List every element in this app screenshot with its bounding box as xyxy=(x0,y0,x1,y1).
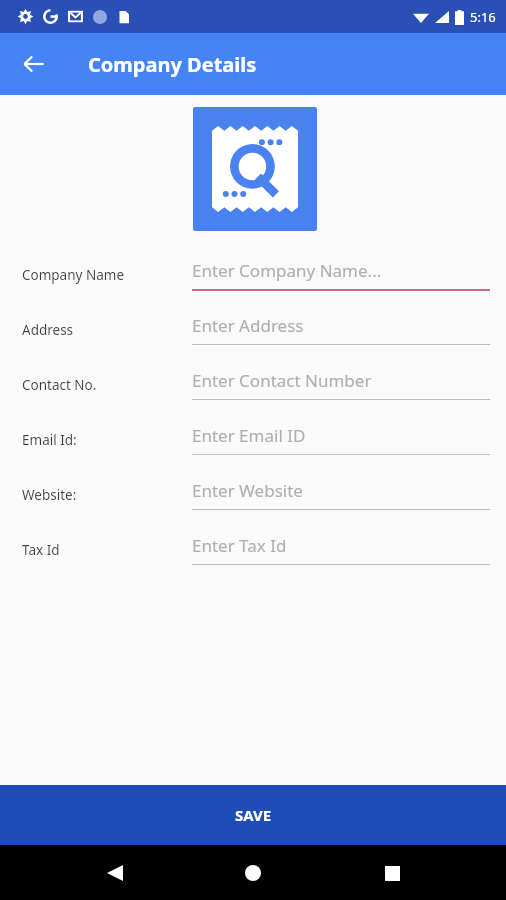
staticText: Enter Address xyxy=(192,314,304,337)
button[interactable]: Tax Id xyxy=(0,522,506,577)
staticText: Tax Id xyxy=(22,541,60,559)
button[interactable]: Contact No. xyxy=(0,357,506,412)
staticText: Enter Website xyxy=(192,479,303,502)
button[interactable]: Email Id: xyxy=(0,412,506,467)
staticText: 5:16 xyxy=(470,8,496,26)
staticText: Address xyxy=(22,321,74,339)
button[interactable]: Address xyxy=(0,302,506,357)
staticText: Email Id: xyxy=(22,431,77,449)
staticText: Contact No. xyxy=(22,376,97,394)
staticText: Enter Tax Id xyxy=(192,534,287,557)
button[interactable]: SAVE xyxy=(0,785,506,845)
button[interactable]: Home xyxy=(229,849,277,897)
button[interactable]: Back xyxy=(10,40,58,88)
button[interactable]: Website: xyxy=(0,467,506,522)
staticText: Enter Contact Number xyxy=(192,369,372,392)
staticText: Website: xyxy=(22,486,77,504)
staticText: Enter Email ID xyxy=(192,424,306,447)
staticText: Enter Company Name... xyxy=(192,259,382,282)
button[interactable]: Recent apps xyxy=(368,849,416,897)
button[interactable]: Company Name xyxy=(0,247,506,302)
staticText: Company Name xyxy=(22,266,125,284)
staticText: Company Details xyxy=(88,51,257,78)
staticText: SAVE xyxy=(235,805,272,825)
button[interactable]: Back xyxy=(91,849,139,897)
